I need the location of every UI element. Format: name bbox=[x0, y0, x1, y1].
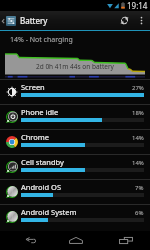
button[interactable]: More options bbox=[135, 11, 148, 30]
button[interactable]: Cell standby bbox=[0, 154, 150, 179]
staticText: 7% bbox=[135, 184, 144, 192]
button[interactable]: Android System bbox=[0, 204, 150, 229]
staticText: 14% bbox=[132, 159, 144, 167]
staticText: Phone idle bbox=[21, 107, 59, 117]
button[interactable]: Android OS bbox=[0, 179, 150, 204]
button[interactable]: Home bbox=[61, 231, 90, 250]
button[interactable]: Battery bbox=[0, 11, 48, 30]
staticText: 14% - Not charging bbox=[10, 35, 73, 45]
staticText: 2d 0h 41m 44s on battery bbox=[36, 62, 114, 71]
button[interactable]: Phone idle bbox=[0, 104, 150, 129]
staticText: Battery bbox=[20, 15, 48, 26]
staticText: Android System bbox=[21, 207, 77, 217]
staticText: 27% bbox=[132, 84, 144, 92]
staticText: Chrome bbox=[21, 132, 50, 142]
button[interactable]: Back bbox=[16, 231, 45, 250]
button[interactable]: Screen bbox=[0, 79, 150, 104]
staticText: Screen bbox=[21, 82, 45, 92]
button[interactable]: Chrome bbox=[0, 129, 150, 154]
staticText: Android OS bbox=[21, 182, 61, 192]
button[interactable]: Recent apps bbox=[111, 231, 140, 250]
staticText: 19:14 bbox=[127, 0, 148, 11]
button[interactable]: Refresh bbox=[113, 11, 135, 30]
staticText: 18% bbox=[132, 109, 144, 117]
staticText: Cell standby bbox=[21, 157, 64, 167]
staticText: 14% bbox=[132, 134, 144, 142]
staticText: 6% bbox=[135, 209, 144, 217]
